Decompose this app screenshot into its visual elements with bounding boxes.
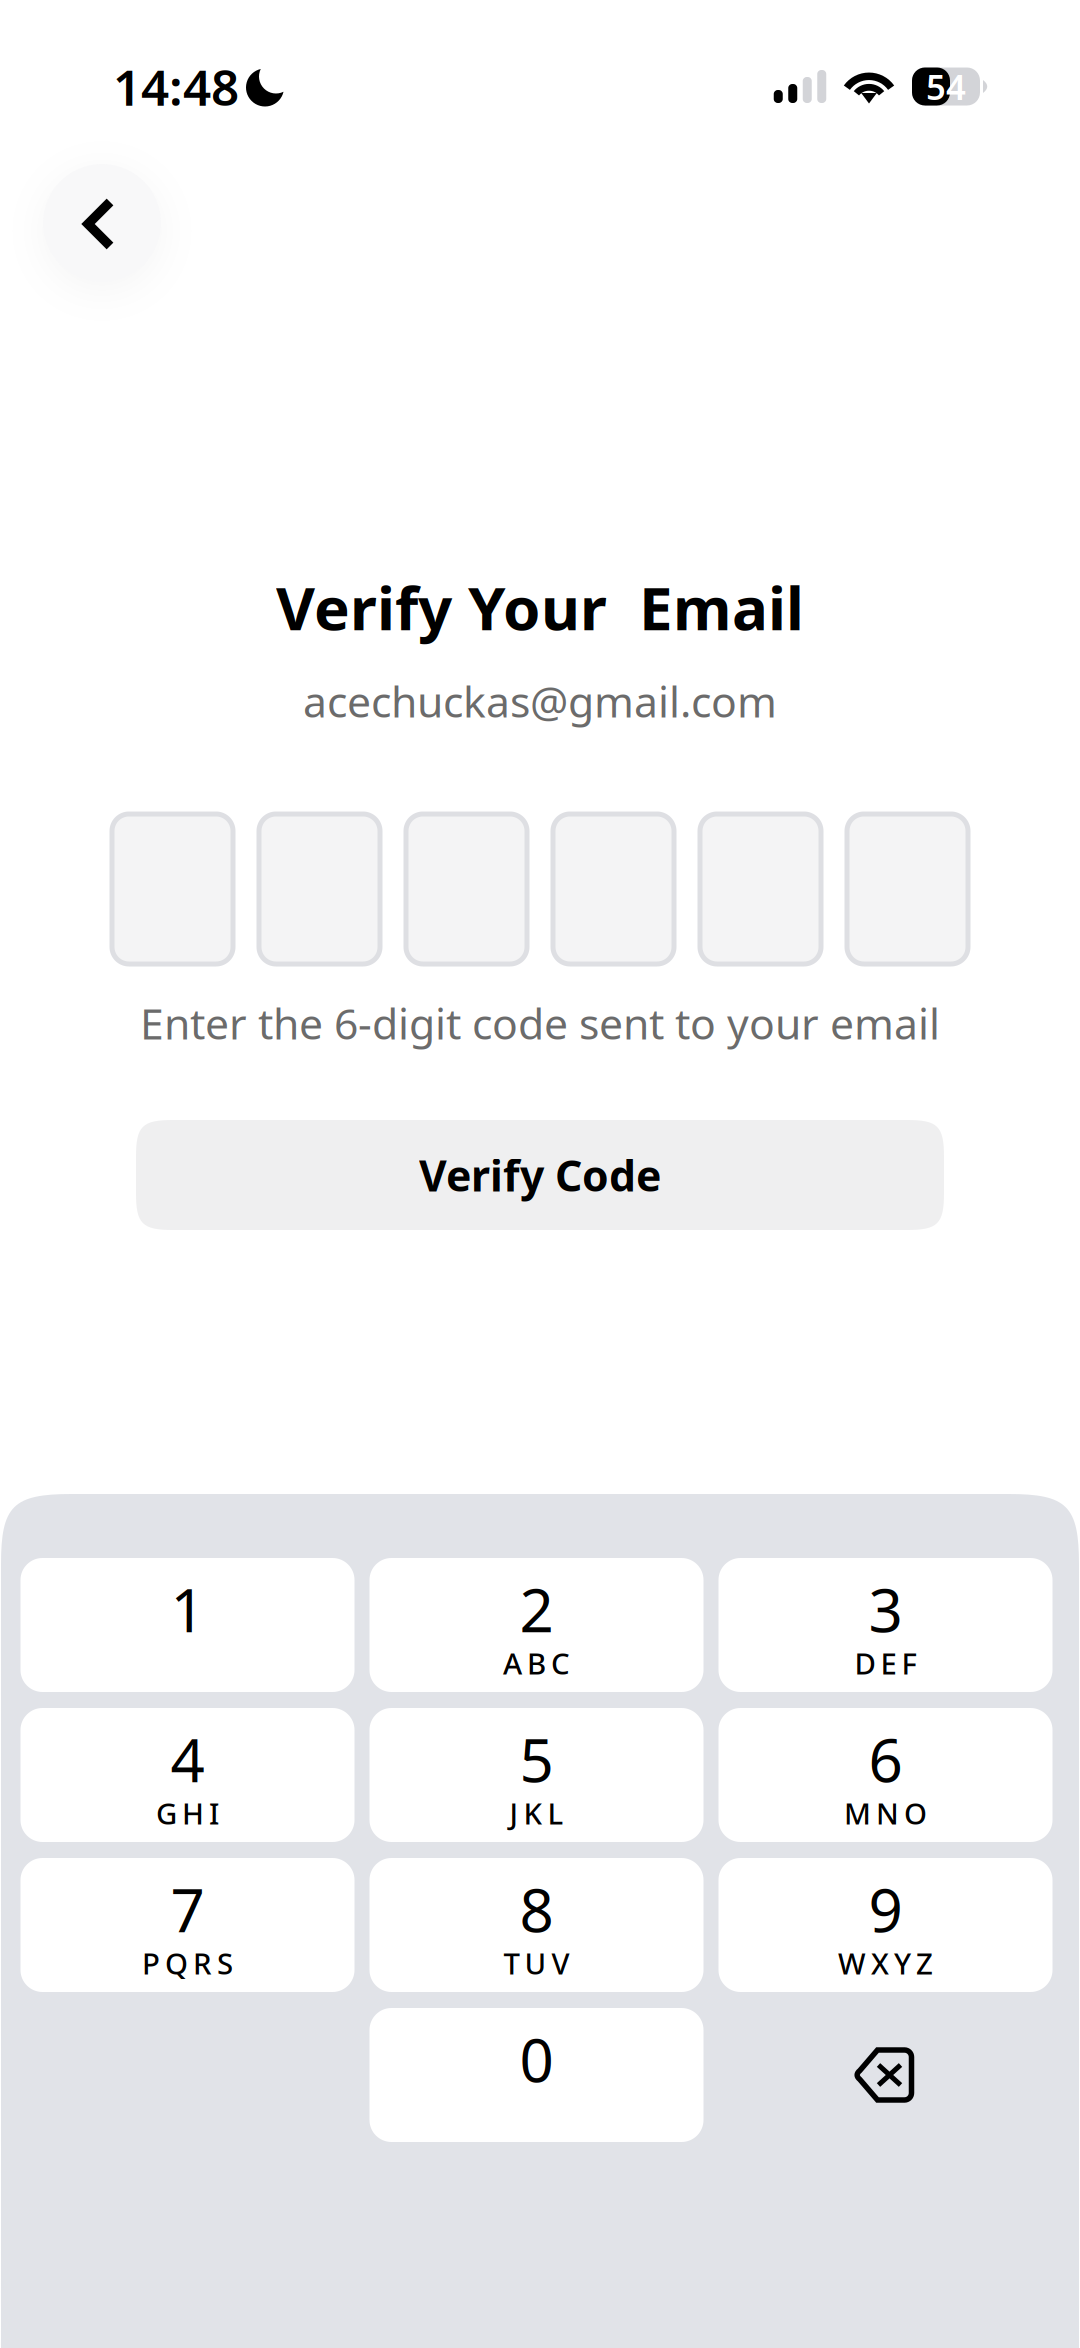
button[interactable]: Digit 3: [406, 814, 527, 964]
staticText: 0: [519, 2019, 553, 2099]
button[interactable]: Digit 4: [553, 814, 674, 964]
button[interactable]: Delete: [718, 2008, 1052, 2142]
button[interactable]: Digit 1: [112, 814, 233, 964]
button[interactable]: Verify Code: [136, 1120, 944, 1230]
staticText: ABC: [503, 1643, 570, 1682]
staticText: PQRS: [142, 1943, 233, 1982]
staticText: 1: [170, 1569, 204, 1649]
staticText: WXYZ: [838, 1943, 933, 1982]
button[interactable]: 1: [20, 1558, 354, 1692]
staticText: 9: [868, 1869, 902, 1949]
button[interactable]: 2: [369, 1558, 703, 1692]
button[interactable]: 7: [20, 1858, 354, 1992]
button[interactable]: 0: [369, 2008, 703, 2142]
staticText: DEF: [854, 1643, 916, 1682]
staticText: 2: [519, 1569, 553, 1649]
staticText: 4: [170, 1719, 204, 1799]
button[interactable]: 6: [718, 1708, 1052, 1842]
staticText: Verify Code: [419, 1147, 661, 1203]
button[interactable]: Digit 2: [259, 814, 380, 964]
button[interactable]: Back: [43, 164, 161, 282]
staticText: Enter the 6-digit code sent to your emai…: [140, 995, 940, 1051]
staticText: JKL: [509, 1793, 563, 1832]
button[interactable]: 3: [718, 1558, 1052, 1692]
staticText: 6: [868, 1719, 902, 1799]
staticText: 7: [170, 1869, 204, 1949]
staticText: 8: [519, 1869, 553, 1949]
staticText: GHI: [156, 1793, 219, 1832]
staticText: MNO: [844, 1793, 927, 1832]
button[interactable]: 9: [718, 1858, 1052, 1992]
staticText: 14:48: [113, 54, 239, 119]
staticText: 5: [519, 1719, 553, 1799]
button[interactable]: 8: [369, 1858, 703, 1992]
button[interactable]: 5: [369, 1708, 703, 1842]
staticText: acechuckas@gmail.com: [303, 673, 777, 729]
button[interactable]: Digit 6: [847, 814, 968, 964]
button[interactable]: 4: [20, 1708, 354, 1842]
button[interactable]: Digit 5: [700, 814, 821, 964]
staticText: Verify Your Email: [276, 567, 804, 647]
staticText: 3: [868, 1569, 902, 1649]
staticText: 54: [926, 63, 966, 109]
staticText: TUV: [503, 1943, 569, 1982]
